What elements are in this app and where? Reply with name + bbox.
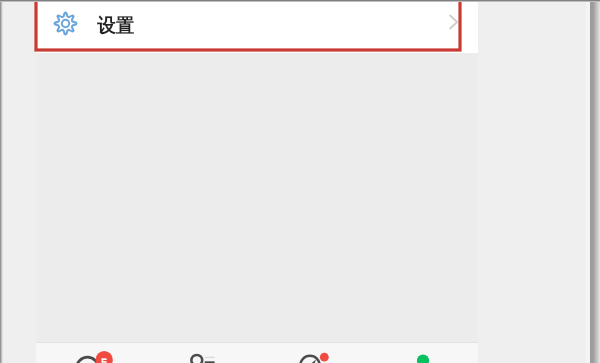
button[interactable]: Chats	[36, 342, 146, 363]
staticText: 设置	[97, 14, 134, 37]
button[interactable]: 设置	[36, 2, 478, 53]
button[interactable]: Contacts	[146, 342, 256, 363]
button[interactable]: Discover	[256, 342, 367, 363]
button[interactable]: Me	[367, 342, 478, 363]
